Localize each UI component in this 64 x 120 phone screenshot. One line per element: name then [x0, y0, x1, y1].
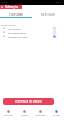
button[interactable]: Manage my data — [0, 34, 64, 38]
button[interactable]: My preferences — [0, 30, 64, 34]
button[interactable]: Favourites — [32, 107, 48, 120]
staticText: My preferences — [8, 31, 27, 34]
staticText: MERCHANT — [41, 13, 56, 17]
staticText: CONTINUE TO ORDER — [15, 100, 42, 104]
other: Notice — [1, 6, 3, 8]
button[interactable]: Profile — [48, 107, 64, 120]
staticText: Discover — [4, 114, 13, 117]
staticText: APPLICATION — [1, 24, 16, 27]
staticText: Delivery to home — [5, 5, 22, 9]
button[interactable]: Discover — [0, 107, 16, 120]
button[interactable]: Notice — [0, 5, 22, 9]
staticText: Profile — [53, 114, 60, 117]
button[interactable]: My account — [0, 26, 64, 30]
button[interactable]: CONTINUE TO ORDER — [3, 98, 54, 105]
staticText: CUSTOMER — [9, 13, 23, 17]
button[interactable]: Orders — [16, 107, 32, 120]
button[interactable]: MERCHANT — [32, 12, 64, 17]
staticText: My account — [8, 27, 22, 30]
button[interactable]: CUSTOMER — [0, 12, 32, 17]
staticText: Favourites — [35, 114, 46, 117]
staticText: Manage my data — [8, 35, 28, 38]
staticText: Orders — [21, 114, 28, 117]
